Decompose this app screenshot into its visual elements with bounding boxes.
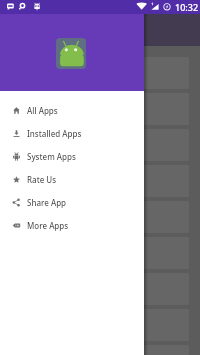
staticText: Rate Us [27,174,57,185]
staticText: System Apps [27,151,76,162]
button[interactable] [10,129,189,161]
staticText: All Apps [27,105,58,116]
button[interactable] [10,93,189,125]
button[interactable] [10,345,189,355]
button[interactable]: Share App [0,191,144,214]
staticText: More Apps [27,220,69,231]
button[interactable]: Installed Apps [0,122,144,145]
button[interactable] [10,273,189,305]
button[interactable] [10,201,189,233]
button[interactable]: More Apps [0,214,144,237]
button[interactable]: Rate Us [0,168,144,191]
button[interactable] [10,237,189,269]
staticText: 10:32 [175,1,199,13]
button[interactable]: All Apps [0,99,144,122]
button[interactable] [10,165,189,197]
button[interactable]: System Apps [0,145,144,168]
button[interactable] [10,309,189,341]
staticText: Share App [27,197,67,208]
other: App logo [56,38,86,69]
staticText: Installed Apps [27,128,82,139]
button[interactable] [10,57,189,89]
